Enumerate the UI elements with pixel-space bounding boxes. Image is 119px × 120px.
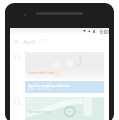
staticText: 9:00 - 10:00 AM xyxy=(28,87,50,91)
staticText: April xyxy=(23,38,36,45)
button[interactable]: Car wash appt xyxy=(25,97,104,120)
button[interactable]: Open navigation menu xyxy=(10,36,22,46)
button[interactable]: Lunch with Sam xyxy=(25,52,104,79)
staticText: 2017 xyxy=(38,38,49,44)
staticText: 6:00 xyxy=(100,29,109,35)
staticText: Lunch with Sam xyxy=(28,70,55,75)
button[interactable]: Tips for working with kids xyxy=(25,81,104,93)
staticText: 11 xyxy=(13,53,21,63)
staticText: TUE xyxy=(13,50,18,53)
staticText: WED xyxy=(13,95,19,98)
staticText: 12 xyxy=(13,98,21,108)
staticText: Car wash appt xyxy=(28,109,52,114)
staticText: Tips for working with kids xyxy=(28,83,71,88)
